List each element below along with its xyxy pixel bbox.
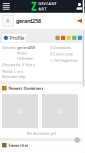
staticText: No deviations yet [26, 130, 55, 136]
staticText: 0 Deviations [50, 45, 71, 50]
staticText: Needs Core Membership [2, 68, 25, 79]
staticText: gerard258 [16, 17, 41, 24]
button[interactable]: Account [74, 0, 85, 13]
staticText: 1,793 Pageviews [50, 57, 78, 63]
button[interactable]: DeviantArt [30, 1, 56, 12]
button[interactable]: Announcements [78, 18, 85, 23]
staticText: DEVIANT [38, 1, 56, 6]
staticText: Deviant for 6 Years [2, 62, 35, 67]
button[interactable]: Close [74, 137, 80, 143]
staticText: Deviant [2, 45, 15, 50]
button[interactable]: Profile [2, 34, 26, 42]
staticText: Newest Deviations [8, 85, 43, 91]
staticText: Favourites [8, 142, 28, 148]
staticText: Male/Unknown [17, 50, 33, 61]
staticText: 0 Comments [50, 51, 73, 56]
staticText: ART [38, 6, 46, 12]
staticText: gerard258 [17, 45, 35, 50]
button[interactable]: Menu [0, 0, 12, 13]
staticText: Profile [9, 34, 24, 41]
